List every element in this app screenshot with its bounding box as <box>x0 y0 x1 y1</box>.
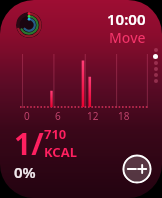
staticText: Move <box>109 28 146 47</box>
staticText: 12 <box>87 109 99 123</box>
staticText: 10:00 <box>107 9 146 29</box>
staticText: 710 <box>44 125 67 143</box>
staticText: 0% <box>14 162 36 182</box>
staticText: 0 <box>24 109 30 123</box>
staticText: 1/ <box>14 123 44 164</box>
staticText: 6 <box>55 109 61 123</box>
button[interactable]: Activity rings <box>16 12 42 38</box>
button[interactable]: Adjust goal <box>122 154 152 184</box>
staticText: 18 <box>118 109 130 123</box>
staticText: KCAL <box>44 143 77 161</box>
